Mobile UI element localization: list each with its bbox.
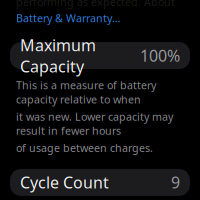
staticText: Battery & Warranty… xyxy=(16,11,120,25)
button[interactable]: Maximum Capacity xyxy=(10,42,190,69)
staticText: of usage between charges. xyxy=(16,141,153,155)
staticText: This is a measure of battery capacity re… xyxy=(16,78,156,106)
staticText: This iPhone battery is performing as exp… xyxy=(16,0,175,9)
staticText: Cycle Count xyxy=(20,172,109,193)
staticText: Maximum Capacity xyxy=(20,34,96,77)
staticText: 9 xyxy=(171,172,180,193)
staticText: it was new. Lower capacity may result in… xyxy=(16,109,173,138)
staticText: 100% xyxy=(140,45,180,66)
button[interactable]: Cycle Count xyxy=(10,169,190,196)
